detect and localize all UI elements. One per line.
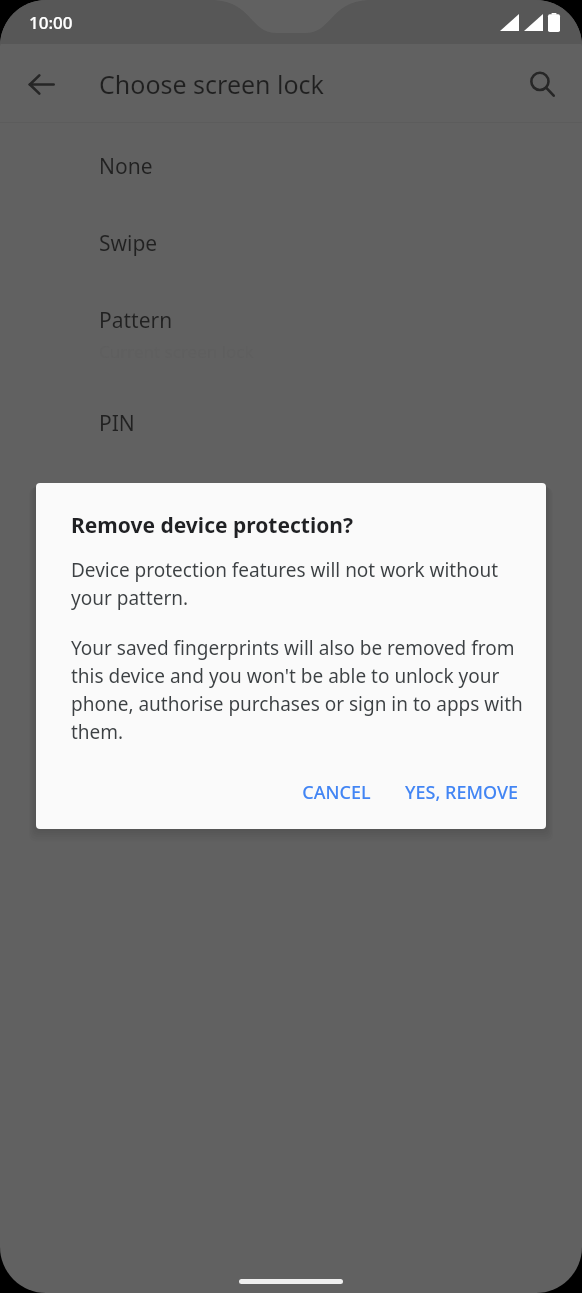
staticText: 10:00 xyxy=(29,11,73,34)
button[interactable]: Search xyxy=(514,56,570,112)
staticText: PIN xyxy=(99,409,135,438)
staticText: Your saved fingerprints will also be rem… xyxy=(71,635,524,745)
staticText: None xyxy=(99,152,153,181)
button[interactable]: Pattern xyxy=(0,258,582,363)
staticText: Remove device protection? xyxy=(71,511,354,540)
staticText: Choose screen lock xyxy=(99,67,324,101)
button[interactable]: CANCEL xyxy=(288,770,385,815)
button[interactable]: None xyxy=(0,124,582,181)
button[interactable]: Back xyxy=(13,56,69,112)
staticText: Pattern xyxy=(99,306,173,335)
staticText: Device protection features will not work… xyxy=(71,557,524,611)
button[interactable]: Swipe xyxy=(0,181,582,258)
staticText: Swipe xyxy=(99,229,158,258)
button[interactable]: PIN xyxy=(0,363,582,438)
staticText: CANCEL xyxy=(302,780,371,805)
staticText: YES, REMOVE xyxy=(405,780,518,805)
button[interactable]: YES, REMOVE xyxy=(391,770,532,815)
